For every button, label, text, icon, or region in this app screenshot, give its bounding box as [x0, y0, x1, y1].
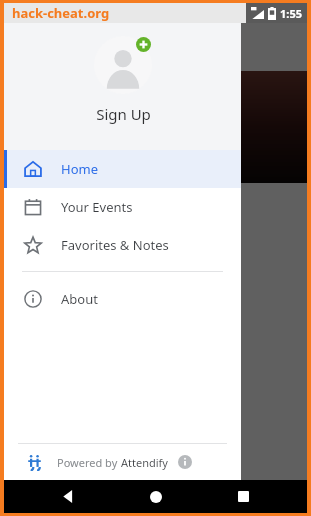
staticText: 1:55: [280, 6, 302, 21]
button[interactable]: Favorites & Notes: [4, 226, 241, 264]
staticText: Powered by: [57, 455, 121, 470]
staticText: hack-cheat.org: [12, 4, 110, 22]
button[interactable]: Information: [178, 455, 192, 469]
button[interactable]: Home: [4, 150, 241, 188]
staticText: About: [61, 290, 98, 308]
staticText: Home: [61, 160, 98, 178]
button[interactable]: Recent apps: [219, 480, 267, 513]
staticText: Your Events: [61, 198, 133, 216]
button[interactable]: Home: [132, 480, 180, 513]
staticText: Attendify: [121, 455, 168, 470]
button[interactable]: Sign up: [84, 34, 162, 126]
button[interactable]: Your Events: [4, 188, 241, 226]
button[interactable]: About: [4, 280, 241, 318]
staticText: Favorites & Notes: [61, 236, 169, 254]
button[interactable]: Back: [44, 480, 92, 513]
button[interactable]: Powered by: [4, 444, 241, 480]
other: Sign up: [136, 37, 151, 52]
staticText: Sign Up: [96, 104, 151, 124]
